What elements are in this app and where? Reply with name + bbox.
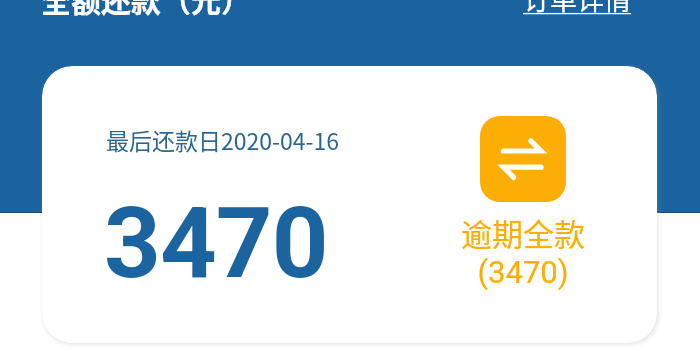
staticText: 逾期全款 bbox=[461, 210, 585, 255]
button[interactable]: Repay overdue amount bbox=[428, 116, 618, 283]
staticText: 3470 bbox=[104, 185, 328, 301]
staticText: 最后还款日2020-04-16 bbox=[106, 123, 340, 156]
button[interactable]: 订单详情 bbox=[523, 0, 631, 18]
staticText: (3470) bbox=[477, 254, 569, 290]
button[interactable]: 全额还款（元） bbox=[41, 0, 251, 20]
other: Repay overdue amount bbox=[480, 116, 566, 202]
